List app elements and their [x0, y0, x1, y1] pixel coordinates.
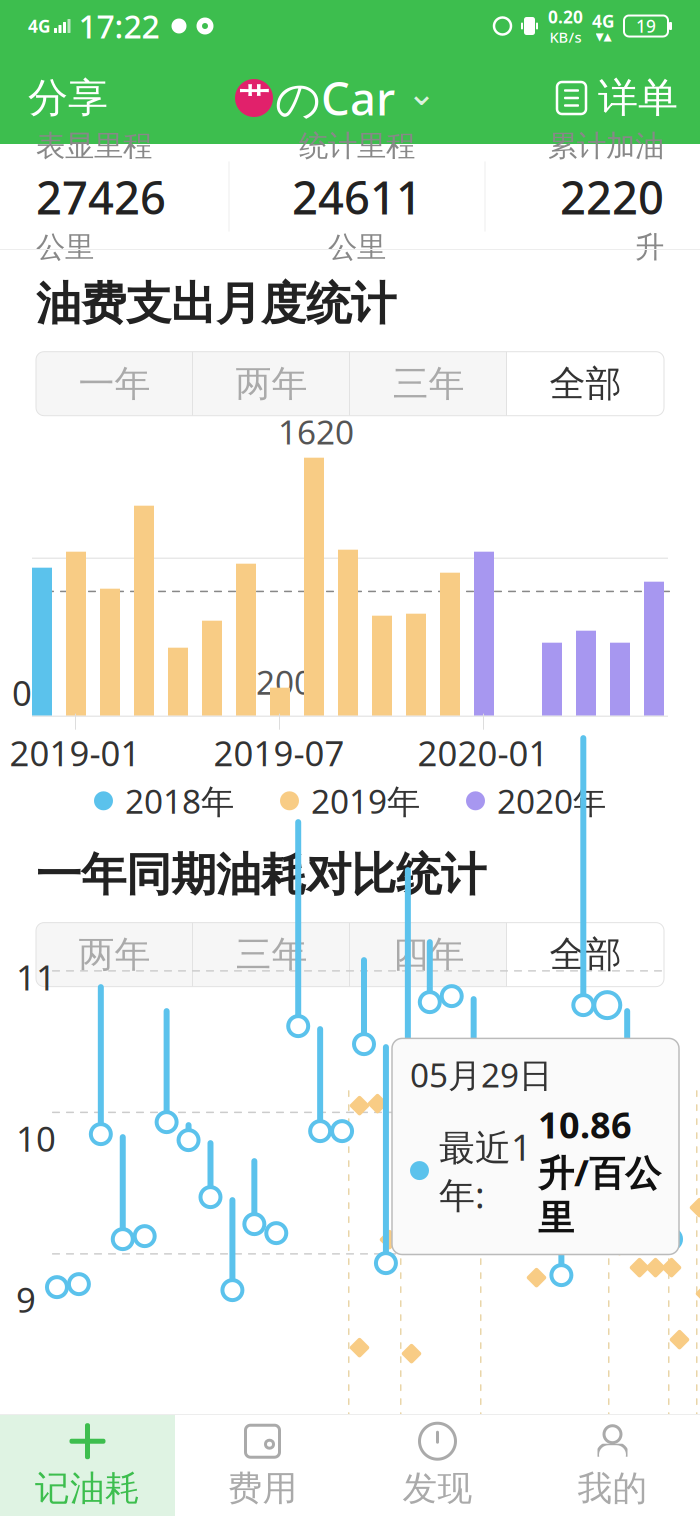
staticText: 公里: [328, 229, 386, 265]
staticText: 分享: [28, 73, 108, 122]
button[interactable]: 记油耗: [0, 1415, 175, 1516]
staticText: 公里: [36, 229, 94, 265]
staticText: 三年: [235, 932, 307, 977]
staticText: 两年: [78, 932, 150, 977]
staticText: 2220: [560, 167, 664, 227]
staticText: 0.20: [548, 5, 583, 28]
button[interactable]: 一年: [36, 352, 193, 416]
staticText: 一年: [78, 362, 150, 406]
button[interactable]: 三年: [350, 352, 507, 416]
staticText: 10.86升/百公里: [538, 1101, 661, 1240]
staticText: 27426: [36, 167, 166, 227]
staticText: 2020-01: [417, 730, 548, 776]
staticText: 2020年: [497, 779, 606, 823]
staticText: 2019-01: [9, 730, 140, 776]
staticText: 升: [635, 229, 664, 265]
staticText: 全部: [549, 932, 621, 977]
staticText: 0: [12, 670, 32, 716]
staticText: 累计加油: [548, 128, 664, 164]
staticText: 发现: [402, 1467, 472, 1510]
button[interactable]: 发现: [350, 1415, 525, 1516]
button[interactable]: 三年: [193, 923, 350, 987]
button[interactable]: 全部: [507, 923, 664, 987]
staticText: 2018年: [125, 779, 234, 823]
staticText: 11: [16, 954, 56, 1000]
staticText: 9: [16, 1276, 36, 1322]
button[interactable]: 费用: [175, 1415, 350, 1516]
staticText: 最近1年:: [439, 1123, 532, 1218]
staticText: ▲: [599, 1014, 620, 1044]
staticText: KB/s: [549, 27, 581, 47]
staticText: 四年: [392, 932, 464, 977]
button[interactable]: 两年: [36, 923, 193, 987]
button[interactable]: 详单: [535, 59, 700, 136]
button[interactable]: 分享: [0, 59, 136, 136]
staticText: 1620: [278, 409, 354, 454]
staticText: 三年: [392, 362, 464, 406]
staticText: 2019年: [311, 779, 420, 823]
staticText: 两年: [235, 362, 307, 406]
staticText: のCar: [275, 68, 395, 128]
button[interactable]: 艹: [229, 58, 442, 138]
staticText: 2019-07: [213, 730, 344, 776]
staticText: 全部: [549, 362, 621, 406]
staticText: 我的: [577, 1467, 647, 1510]
staticText: ⌄: [407, 73, 436, 113]
staticText: 17:22: [78, 5, 159, 47]
staticText: 详单: [598, 73, 678, 122]
staticText: 24611: [292, 167, 422, 227]
staticText: 记油耗: [35, 1467, 140, 1510]
staticText: 一年同期油耗对比统计: [36, 847, 486, 903]
staticText: 统计里程: [299, 128, 415, 164]
staticText: 19: [636, 14, 656, 37]
button[interactable]: 我的: [525, 1415, 700, 1516]
staticText: 4G: [28, 14, 51, 37]
staticText: 艹: [239, 80, 268, 116]
staticText: ▼▲: [595, 30, 611, 43]
staticText: 4G: [592, 9, 615, 32]
staticText: 费用: [227, 1467, 297, 1510]
staticText: 05月29日: [410, 1052, 552, 1097]
staticText: 10: [16, 1115, 56, 1161]
staticText: 200: [256, 660, 313, 704]
button[interactable]: 四年: [350, 923, 507, 987]
staticText: 油费支出月度统计: [36, 276, 396, 332]
staticText: 表显里程: [36, 128, 152, 164]
button[interactable]: 两年: [193, 352, 350, 416]
button[interactable]: 全部: [507, 352, 664, 416]
